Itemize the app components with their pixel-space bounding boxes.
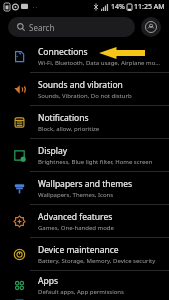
staticText: Search	[29, 22, 55, 33]
staticText: Wi-Fi, Bluetooth, Data usage, Airplane m…	[38, 59, 161, 67]
staticText: Apps	[38, 275, 58, 287]
button[interactable]: Device maintenance	[0, 238, 169, 270]
button[interactable]: Apps	[0, 271, 169, 300]
button[interactable]: Advanced features	[0, 205, 169, 237]
button[interactable]: Notifications	[0, 106, 169, 138]
staticText: Block, allow, prioritize	[38, 125, 100, 133]
staticText: Default apps, App permissions	[38, 288, 124, 296]
staticText: Wallpapers, Themes, Icons	[38, 191, 114, 199]
button[interactable]: Display	[0, 139, 169, 171]
button[interactable]: Sounds and vibration	[0, 73, 169, 105]
staticText: Notifications	[38, 112, 89, 124]
button[interactable]: Account	[141, 17, 161, 37]
staticText: Device maintenance	[38, 244, 119, 256]
staticText: Wallpapers and themes	[38, 178, 133, 190]
staticText: Sounds and vibration	[38, 79, 123, 91]
staticText: · ·	[33, 4, 37, 11]
staticText: Connections	[38, 46, 88, 58]
button[interactable]: Search	[8, 17, 135, 37]
staticText: Games, One-handed mode	[38, 224, 114, 232]
staticText: Display	[38, 145, 67, 157]
button[interactable]: Wallpapers and themes	[0, 172, 169, 204]
button[interactable]: Connections	[0, 40, 169, 72]
staticText: Advanced features	[38, 211, 113, 223]
staticText: 11:25 AM	[134, 2, 165, 12]
staticText: Sounds, Vibration, Do not disturb	[38, 92, 132, 100]
staticText: Battery, Storage, Memory, Device securit…	[38, 257, 156, 265]
staticText: 14%	[111, 2, 125, 12]
staticText: Brightness, Blue light filter, Home scre…	[38, 158, 153, 166]
